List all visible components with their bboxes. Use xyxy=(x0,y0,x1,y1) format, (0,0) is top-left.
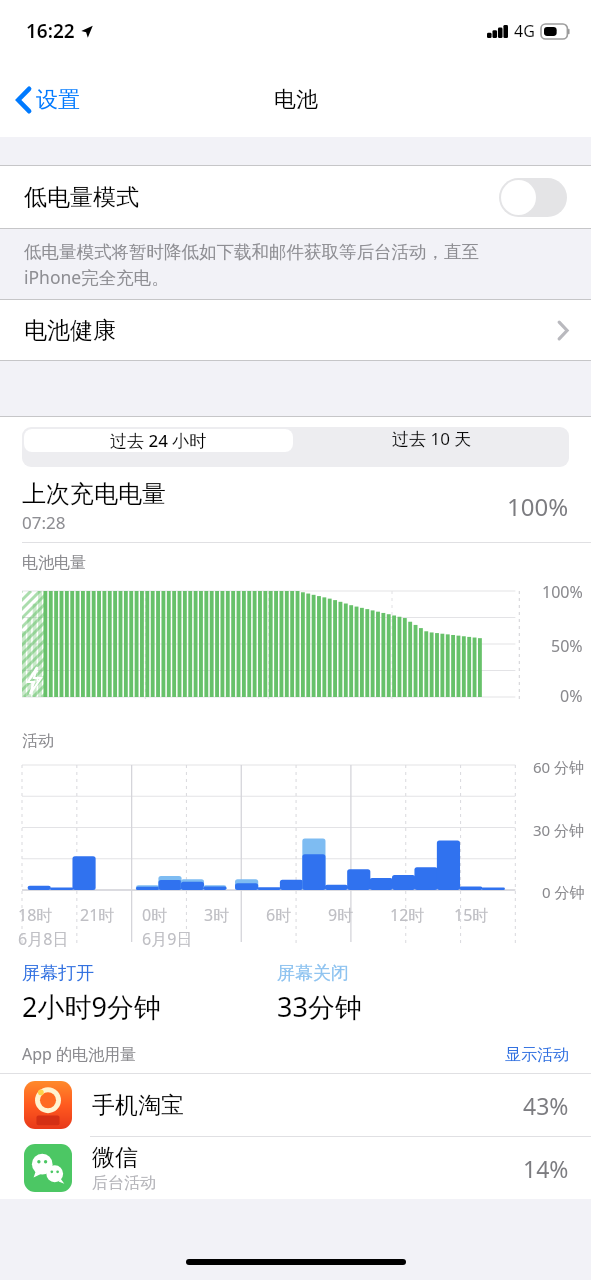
staticText: 6时 xyxy=(266,904,292,926)
staticText: 12时 xyxy=(390,904,425,926)
staticText: 低电量模式 xyxy=(24,183,139,212)
button[interactable]: 微信 xyxy=(0,1137,591,1199)
staticText: 60 分钟 xyxy=(533,757,585,777)
button[interactable]: 手机淘宝 xyxy=(0,1074,591,1136)
staticText: 15时 xyxy=(454,904,489,926)
staticText: 过去 10 天 xyxy=(392,427,472,450)
staticText: 微信 xyxy=(92,1143,138,1172)
button[interactable]: 过去 10 天 xyxy=(295,427,569,450)
staticText: 2小时9分钟 xyxy=(22,988,161,1025)
staticText: 0% xyxy=(560,685,583,707)
staticText: 3时 xyxy=(204,904,230,926)
staticText: 0时 xyxy=(142,904,168,926)
button[interactable]: 低电量模式 xyxy=(0,166,591,228)
staticText: 后台活动 xyxy=(92,1173,156,1193)
staticText: 低电量模式将暂时降低如下载和邮件获取等后台活动，直至 iPhone完全充电。 xyxy=(24,241,479,289)
staticText: 屏幕打开 xyxy=(22,962,94,985)
staticText: 43% xyxy=(523,1090,569,1121)
staticText: 14% xyxy=(523,1153,569,1184)
staticText: 活动 xyxy=(22,731,54,751)
button[interactable]: 低电量模式开关 xyxy=(499,178,567,217)
staticText: 电池 xyxy=(274,86,318,114)
staticText: 4G xyxy=(514,20,535,42)
staticText: 50% xyxy=(551,635,583,657)
button[interactable]: 过去 24 小时 xyxy=(24,429,293,452)
staticText: 显示活动 xyxy=(505,1045,569,1065)
button[interactable]: 显示活动 xyxy=(505,1045,569,1065)
staticText: 电池电量 xyxy=(22,553,86,573)
staticText: 电池健康 xyxy=(24,316,116,345)
staticText: 屏幕关闭 xyxy=(277,962,349,985)
staticText: 6月8日 xyxy=(18,928,69,950)
staticText: 07:28 xyxy=(22,511,66,534)
staticText: 过去 24 小时 xyxy=(110,429,207,452)
staticText: 100% xyxy=(507,490,569,523)
staticText: 0 分钟 xyxy=(542,882,585,902)
button[interactable]: 设置 xyxy=(16,86,80,114)
staticText: 6月9日 xyxy=(142,928,193,950)
staticText: 21时 xyxy=(80,904,115,926)
staticText: 设置 xyxy=(36,86,80,114)
staticText: 18时 xyxy=(18,904,53,926)
staticText: 16:22 xyxy=(26,18,75,44)
staticText: 上次充电电量 xyxy=(22,479,166,509)
button[interactable]: 电池健康 xyxy=(0,300,591,360)
staticText: App 的电池用量 xyxy=(22,1043,137,1065)
staticText: 33分钟 xyxy=(277,988,362,1025)
staticText: 30 分钟 xyxy=(533,820,585,840)
staticText: 100% xyxy=(542,581,583,603)
staticText: 手机淘宝 xyxy=(92,1091,184,1120)
staticText: 9时 xyxy=(328,904,354,926)
